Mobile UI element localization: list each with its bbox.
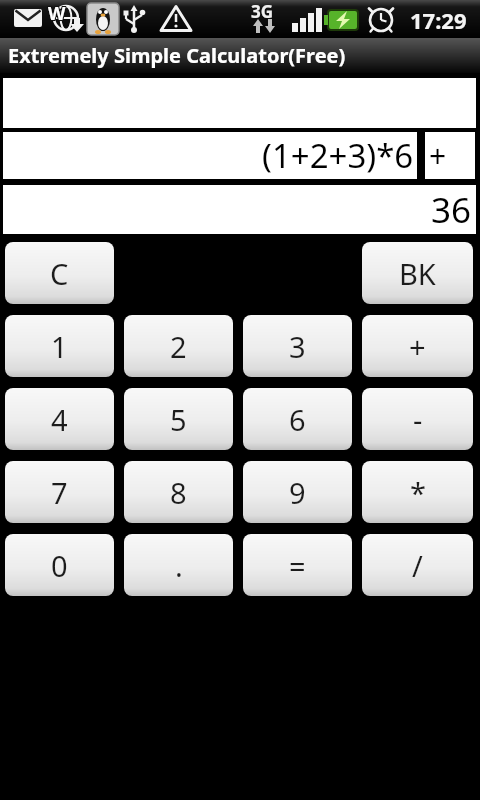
button[interactable]: 0 [5,534,114,596]
button[interactable]: = [243,534,352,596]
button[interactable]: 7 [5,461,114,523]
staticText: W [49,0,67,25]
staticText: W [49,1,67,26]
staticText: = [289,546,306,585]
staticText: * [410,473,426,512]
button[interactable]: 5 [124,388,233,450]
button[interactable]: 2 [124,315,233,377]
staticText: 3 [289,327,306,366]
button[interactable]: - [362,388,473,450]
staticText: 36 [431,186,472,234]
staticText: (1+2+3)*6 [262,133,414,178]
button[interactable]: * [362,461,473,523]
button[interactable]: C [5,242,114,304]
staticText: 5 [170,400,187,439]
staticText: + [429,135,447,176]
staticText: + [409,327,426,366]
staticText: 0 [51,546,68,585]
staticText: W [48,2,66,27]
staticText: 9 [289,473,306,512]
button[interactable]: 4 [5,388,114,450]
button[interactable]: / [362,534,473,596]
staticText: C [50,254,69,293]
staticText: 3G [251,0,274,23]
button[interactable]: . [124,534,233,596]
staticText: W [47,1,65,26]
staticText: 17:29 [410,5,467,35]
button[interactable]: 6 [243,388,352,450]
button[interactable]: 8 [124,461,233,523]
button[interactable]: 9 [243,461,352,523]
staticText: 1 [51,327,68,366]
staticText: W [48,1,66,26]
staticText: 2 [170,327,187,366]
staticText: 4 [51,400,68,439]
button[interactable]: BK [362,242,473,304]
staticText: W [47,0,65,25]
staticText: W [47,2,65,27]
staticText: 7 [51,473,68,512]
staticText: - [413,400,423,439]
staticText: BK [399,254,436,293]
staticText: W [49,2,67,27]
staticText: W [48,0,66,25]
button[interactable]: 1 [5,315,114,377]
staticText: 8 [170,473,187,512]
staticText: . [175,546,183,585]
staticText: / [412,546,423,585]
button[interactable]: 3 [243,315,352,377]
button[interactable]: + [362,315,473,377]
staticText: 6 [289,400,306,439]
staticText: Extremely Simple Calculator(Free) [8,42,346,69]
